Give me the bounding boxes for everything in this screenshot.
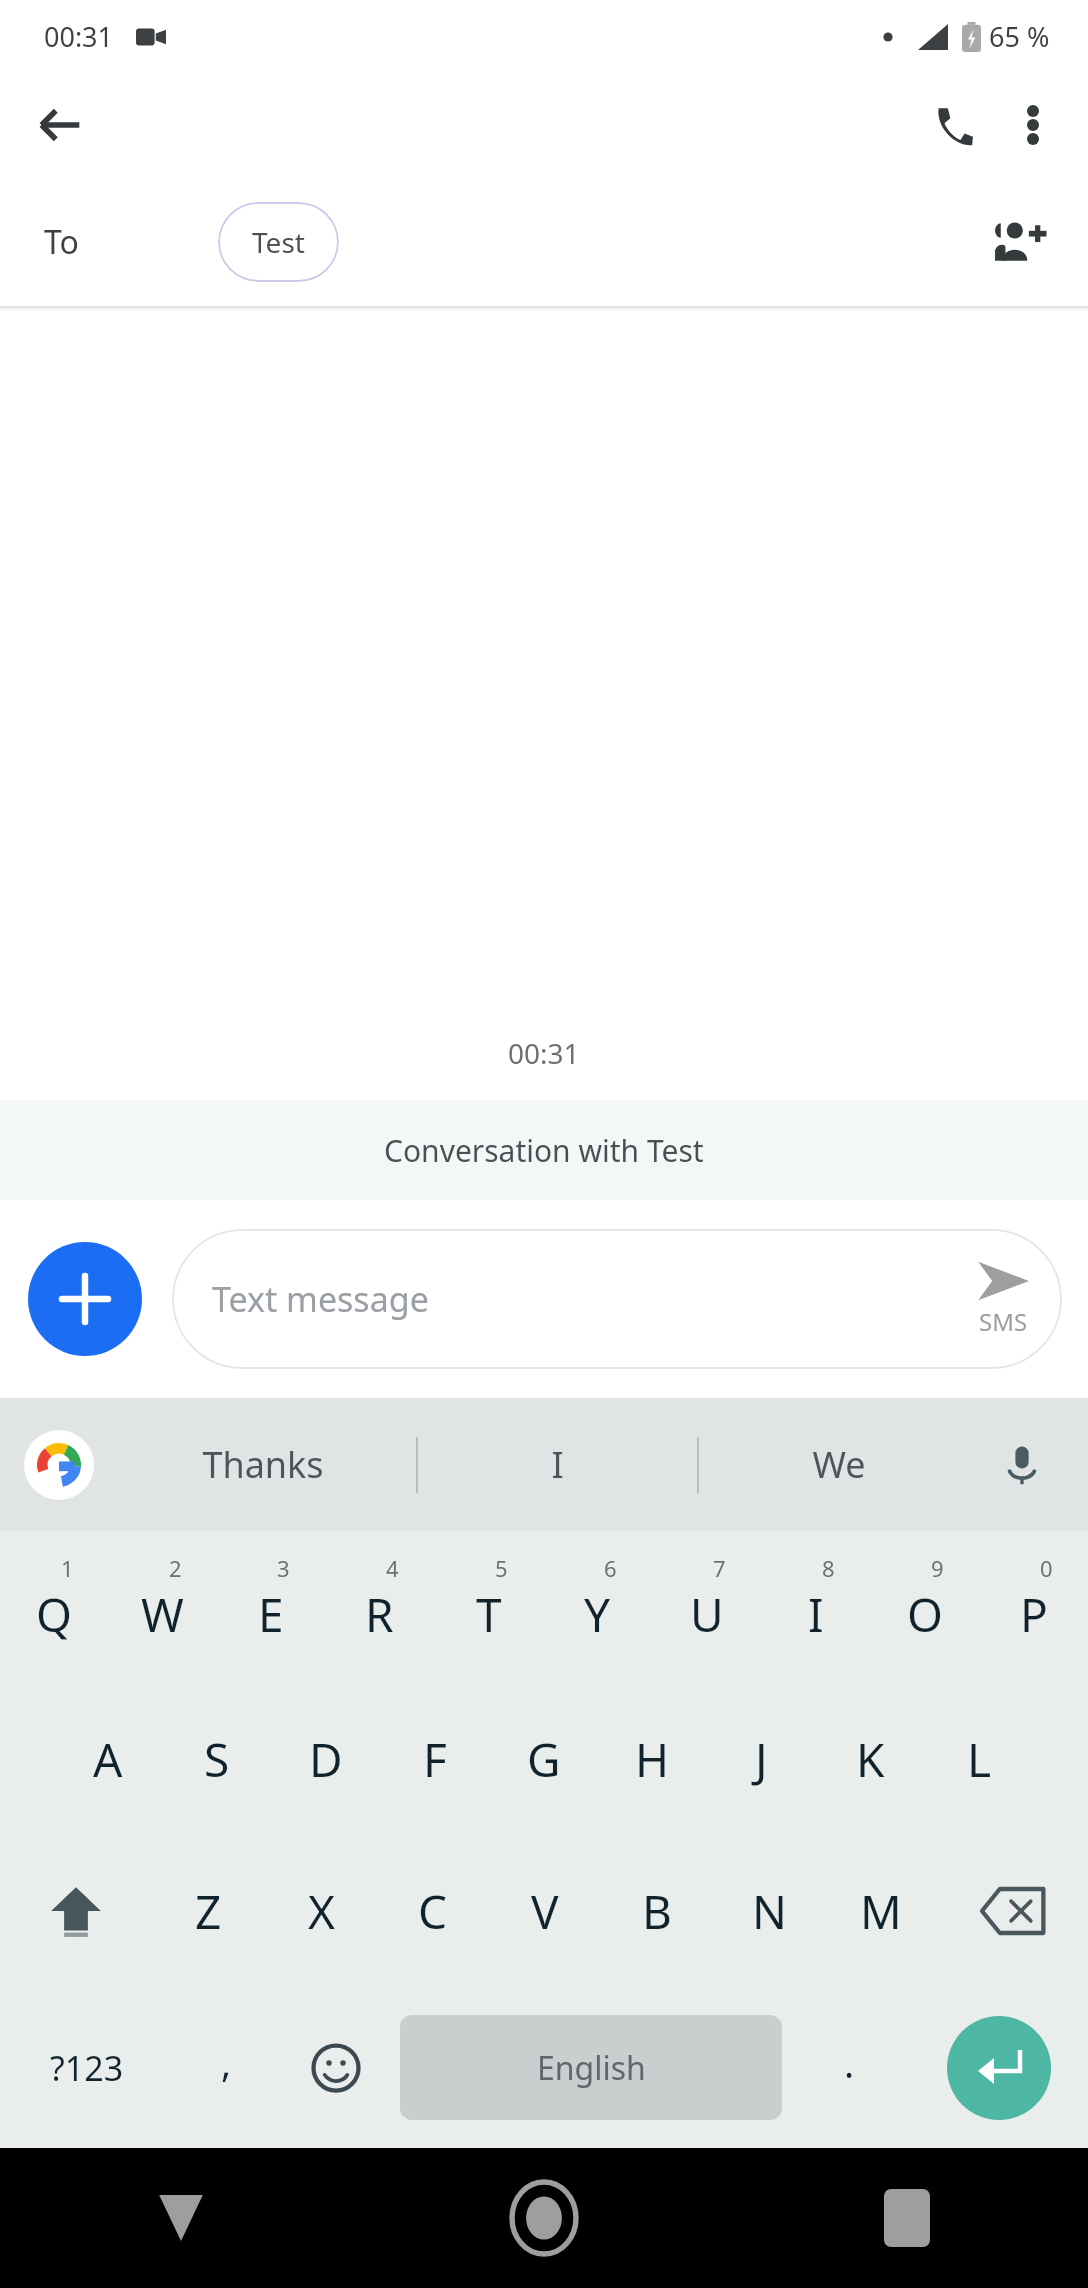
button[interactable]: 8 [761, 1531, 870, 1683]
button[interactable]: Thanks [110, 1398, 416, 1531]
button[interactable]: Back [22, 87, 98, 163]
staticText: K [856, 1728, 885, 1791]
staticText: We [812, 1440, 866, 1489]
staticText: English [537, 2046, 646, 2090]
staticText: 9 [931, 1553, 944, 1583]
button[interactable]: 1 [0, 1531, 108, 1683]
staticText: I [808, 1583, 824, 1646]
staticText: 7 [713, 1553, 726, 1583]
button[interactable]: Send SMS [970, 1257, 1036, 1342]
staticText: Text message [212, 1276, 429, 1322]
staticText: 3 [277, 1553, 290, 1583]
button[interactable]: 3 [216, 1531, 325, 1683]
staticText: To [44, 220, 79, 264]
staticText: SMS [979, 1305, 1028, 1338]
staticText: N [752, 1880, 787, 1943]
button[interactable]: Enter [947, 2016, 1051, 2120]
staticText: X [308, 1880, 335, 1943]
button[interactable]: K [816, 1683, 925, 1835]
staticText: 00:31 [508, 1034, 580, 1072]
button[interactable]: 5 [434, 1531, 543, 1683]
button[interactable]: J [707, 1683, 816, 1835]
staticText: ?123 [50, 2045, 124, 2091]
button[interactable]: L [925, 1683, 1034, 1835]
button[interactable]: V [489, 1835, 601, 1987]
staticText: Thanks [202, 1440, 324, 1489]
button[interactable]: G [489, 1683, 598, 1835]
button[interactable]: I [418, 1398, 697, 1531]
staticText: D [309, 1728, 343, 1791]
button[interactable]: D [271, 1683, 380, 1835]
staticText: 2 [169, 1553, 182, 1583]
button[interactable]: Backspace [937, 1835, 1088, 1987]
staticText: . [844, 2037, 855, 2089]
staticText: E [258, 1583, 284, 1646]
staticText: R [365, 1583, 394, 1646]
staticText: C [418, 1880, 448, 1943]
staticText: S [204, 1728, 230, 1791]
staticText: Q [36, 1583, 72, 1646]
button[interactable]: Attach [28, 1242, 142, 1356]
staticText: J [755, 1728, 768, 1791]
staticText: I [551, 1440, 564, 1489]
button[interactable]: 2 [108, 1531, 216, 1683]
button[interactable]: Add recipient [980, 202, 1060, 282]
button[interactable]: 4 [325, 1531, 434, 1683]
button[interactable]: Google [24, 1430, 94, 1500]
button[interactable]: Recent apps [725, 2148, 1088, 2288]
button[interactable]: Call [912, 85, 992, 165]
button[interactable]: Hide keyboard [0, 2148, 362, 2288]
button[interactable]: 6 [543, 1531, 652, 1683]
staticText: Y [584, 1583, 611, 1646]
button[interactable]: , [173, 1987, 279, 2148]
staticText: 5 [495, 1553, 508, 1583]
button[interactable]: B [601, 1835, 713, 1987]
button[interactable]: X [265, 1835, 377, 1987]
staticText: F [423, 1728, 447, 1791]
button[interactable]: We [699, 1398, 978, 1531]
staticText: B [642, 1880, 672, 1943]
button[interactable]: Emoji [279, 1987, 392, 2148]
button[interactable]: Home [362, 2148, 725, 2288]
button[interactable]: Test [218, 202, 339, 282]
staticText: 8 [822, 1553, 835, 1583]
staticText: Z [195, 1880, 222, 1943]
staticText: M [860, 1880, 902, 1943]
staticText: W [141, 1583, 184, 1646]
button[interactable]: 0 [979, 1531, 1088, 1683]
button[interactable]: More options [998, 90, 1068, 160]
staticText: G [527, 1728, 561, 1791]
button[interactable]: . [790, 1987, 909, 2148]
button[interactable]: A [54, 1683, 162, 1835]
button[interactable]: 9 [870, 1531, 979, 1683]
button[interactable]: Text message [172, 1229, 1062, 1369]
button[interactable]: 7 [652, 1531, 761, 1683]
staticText: L [967, 1728, 992, 1791]
button[interactable]: C [377, 1835, 489, 1987]
staticText: U [690, 1583, 724, 1646]
staticText: 4 [386, 1553, 399, 1583]
staticText: 0 [1040, 1553, 1053, 1583]
button[interactable]: M [825, 1835, 937, 1987]
staticText: 1 [61, 1553, 74, 1583]
button[interactable]: ?123 [0, 1987, 173, 2148]
button[interactable]: English [400, 2015, 782, 2120]
staticText: , [221, 2036, 232, 2088]
staticText: T [476, 1583, 502, 1646]
button[interactable]: Voice input [986, 1429, 1058, 1501]
staticText: 65 % [989, 18, 1050, 55]
button[interactable]: Shift [0, 1835, 152, 1987]
button[interactable]: N [713, 1835, 825, 1987]
staticText: O [907, 1583, 943, 1646]
staticText: Test [252, 223, 305, 261]
button[interactable]: S [162, 1683, 271, 1835]
button[interactable]: Z [152, 1835, 265, 1987]
staticText: 6 [604, 1553, 617, 1583]
staticText: Conversation with Test [384, 1130, 704, 1171]
staticText: P [1020, 1583, 1048, 1646]
button[interactable]: F [380, 1683, 489, 1835]
staticText: 00:31 [44, 18, 114, 55]
staticText: V [531, 1880, 559, 1943]
button[interactable]: H [598, 1683, 707, 1835]
staticText: A [93, 1728, 123, 1791]
